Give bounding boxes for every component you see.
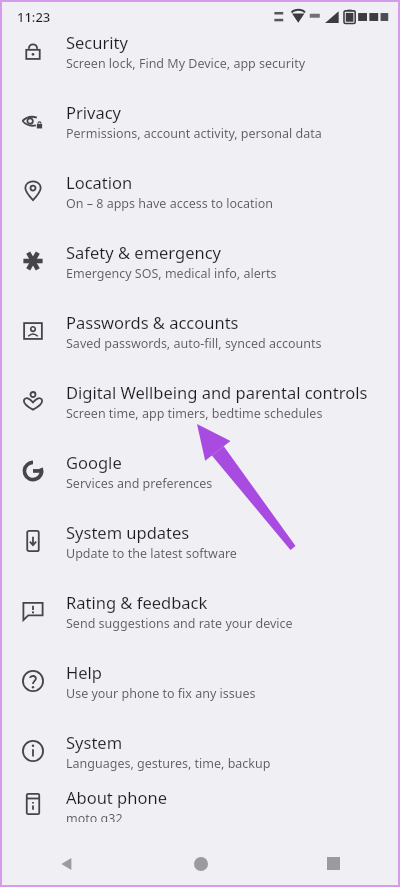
staticText: Privacy (66, 101, 122, 123)
staticText: 11:23 (17, 8, 51, 26)
staticText: Rating & feedback (66, 591, 208, 613)
staticText: Saved passwords, auto-fill, synced accou… (66, 335, 322, 352)
button[interactable]: Passwords & accounts (0, 296, 400, 366)
button[interactable]: System (0, 716, 400, 786)
staticText: Passwords & accounts (66, 311, 239, 333)
staticText: System updates (66, 521, 190, 543)
staticText: Update to the latest software (66, 545, 237, 562)
staticText: Location (66, 171, 133, 193)
staticText: Emergency SOS, medical info, alerts (66, 265, 277, 282)
staticText: Security (66, 34, 128, 53)
button[interactable]: Privacy (0, 86, 400, 156)
staticText: Use your phone to fix any issues (66, 685, 256, 702)
staticText: Google (66, 451, 122, 473)
staticText: On – 8 apps have access to location (66, 195, 274, 212)
button[interactable]: Back (0, 840, 134, 887)
button[interactable]: Rating & feedback (0, 576, 400, 646)
staticText: About phone (66, 786, 167, 808)
button[interactable]: Digital Wellbeing and parental controls (0, 366, 400, 436)
staticText: Safety & emergency (66, 241, 222, 263)
button[interactable]: Home (134, 840, 267, 887)
staticText: Digital Wellbeing and parental controls (66, 381, 368, 403)
button[interactable]: About phone (0, 786, 400, 822)
staticText: Languages, gestures, time, backup (66, 755, 271, 772)
button[interactable]: Recent apps (267, 840, 400, 887)
button[interactable]: Location (0, 156, 400, 226)
staticText: Help (66, 661, 102, 683)
button[interactable]: Help (0, 646, 400, 716)
button[interactable]: Google (0, 436, 400, 506)
button[interactable]: Safety & emergency (0, 226, 400, 296)
staticText: Services and preferences (66, 475, 213, 492)
staticText: Screen time, app timers, bedtime schedul… (66, 405, 323, 422)
button[interactable]: System updates (0, 506, 400, 576)
staticText: moto g32 (66, 810, 123, 822)
staticText: Send suggestions and rate your device (66, 615, 293, 632)
staticText: System (66, 731, 123, 753)
button[interactable]: Security (0, 34, 400, 86)
staticText: Permissions, account activity, personal … (66, 125, 322, 142)
staticText: Screen lock, Find My Device, app securit… (66, 55, 306, 72)
